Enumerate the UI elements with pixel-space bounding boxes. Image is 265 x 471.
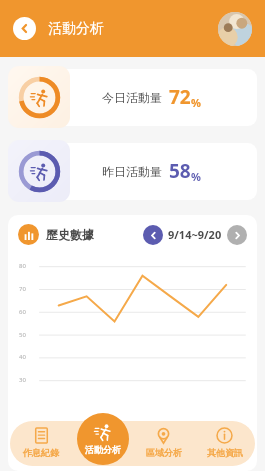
button[interactable]: Profile [218, 12, 252, 46]
button[interactable]: 區域分析 [133, 410, 194, 466]
button[interactable]: Previous week [143, 225, 163, 245]
staticText: 其他資訊 [207, 447, 243, 458]
staticText: 歷史數據 [46, 227, 94, 242]
staticText: 昨日活動量 [102, 164, 162, 179]
staticText: 9/14~9/20 [168, 227, 222, 242]
staticText: 作息紀錄 [23, 447, 59, 458]
staticText: 70 [19, 285, 26, 293]
staticText: 40 [19, 353, 26, 361]
staticText: 80 [19, 262, 26, 270]
button[interactable]: Next week [227, 225, 247, 245]
button[interactable]: 昨日活動量 [8, 140, 257, 202]
staticText: 50 [19, 331, 26, 339]
button[interactable]: 今日活動量 [8, 66, 257, 128]
staticText: 58 [169, 158, 191, 184]
staticText: 今日活動量 [102, 90, 162, 105]
staticText: 活動分析 [85, 444, 121, 455]
staticText: % [191, 95, 201, 110]
staticText: 72 [169, 84, 191, 110]
button[interactable]: 其他資訊 [194, 410, 255, 466]
staticText: 區域分析 [146, 447, 182, 458]
staticText: % [191, 169, 201, 184]
staticText: 60 [19, 308, 26, 316]
button[interactable]: 活動分析 [77, 413, 129, 465]
button[interactable]: Back [13, 17, 36, 40]
staticText: 30 [19, 376, 26, 384]
staticText: 活動分析 [48, 20, 104, 38]
button[interactable]: 作息紀錄 [10, 410, 72, 466]
